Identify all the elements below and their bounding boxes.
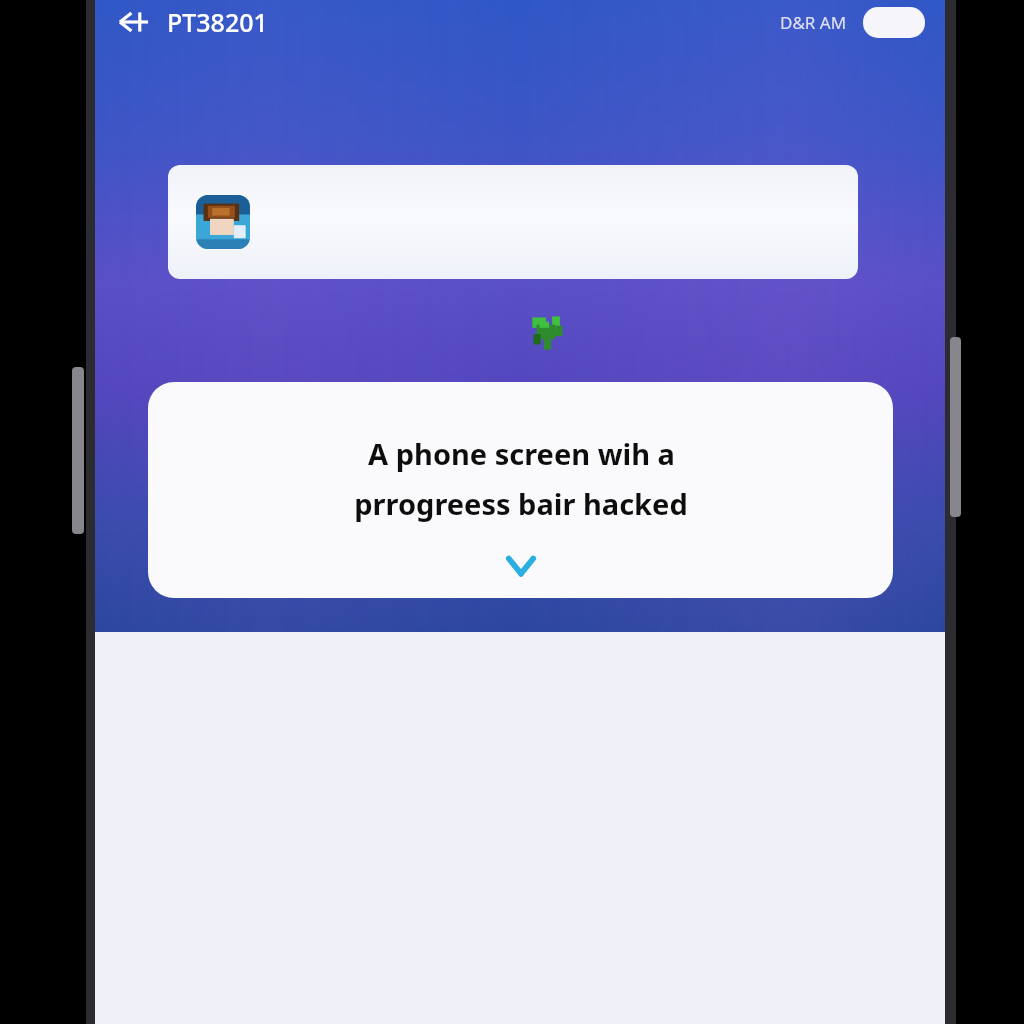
staticText: prrogreess bair hacked [354,484,688,523]
button[interactable]: Expand [499,543,543,587]
staticText: PT38201 [167,5,268,39]
button[interactable] [168,165,858,279]
other: Creature sprite [523,306,575,358]
staticText: A phone screen wih a [368,434,675,473]
staticText: D&R AM [780,11,847,34]
button[interactable]: Back [113,1,155,43]
button[interactable]: A phone screen wih a [148,382,893,598]
button[interactable]: More options [863,7,925,38]
